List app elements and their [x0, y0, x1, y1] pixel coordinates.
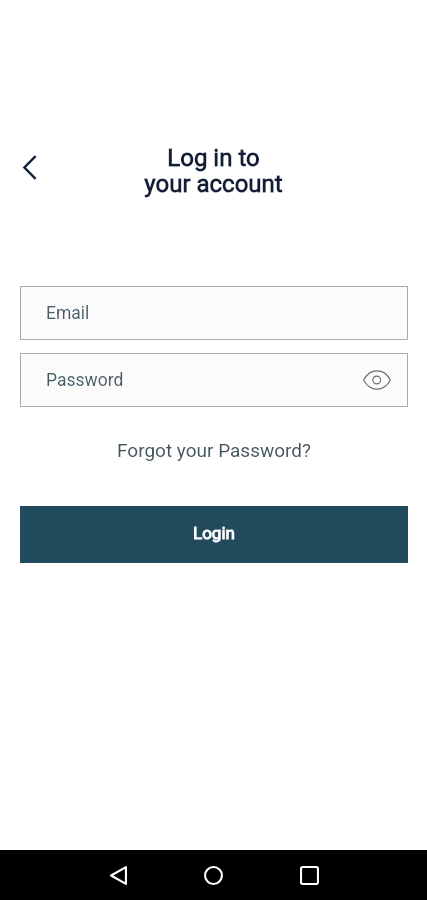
- staticText: Password: [46, 370, 124, 391]
- button[interactable]: Show password: [350, 353, 404, 407]
- staticText: Log in to your account: [0, 144, 427, 198]
- button[interactable]: Forgot your Password?: [107, 433, 322, 467]
- button[interactable]: Password: [20, 353, 408, 407]
- button[interactable]: Back: [6, 143, 54, 191]
- staticText: Forgot your Password?: [117, 439, 312, 461]
- button[interactable]: Back: [95, 852, 142, 899]
- button[interactable]: Recents: [286, 852, 333, 899]
- staticText: Login: [193, 523, 235, 543]
- button[interactable]: Login: [20, 506, 408, 563]
- button[interactable]: Home: [190, 852, 237, 899]
- staticText: Email: [46, 303, 90, 324]
- button[interactable]: Email: [20, 286, 408, 340]
